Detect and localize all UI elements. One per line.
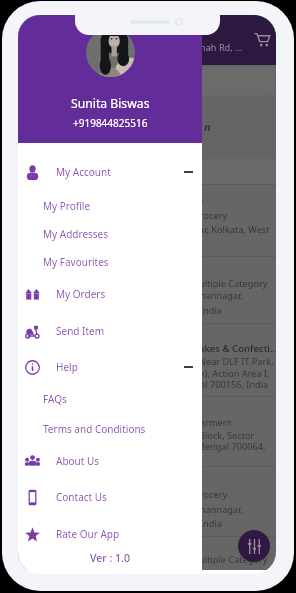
staticText: rocery	[200, 488, 228, 501]
staticText: hannagar,	[200, 503, 243, 516]
staticText: About Us	[56, 454, 100, 468]
staticText: My Orders	[56, 287, 106, 301]
staticText: My Profile	[43, 199, 91, 213]
button[interactable]: My Orders	[18, 276, 202, 312]
staticText: arment	[200, 416, 232, 429]
staticText: ultiple Category	[199, 277, 268, 290]
staticText: akes & Confecti...	[199, 342, 276, 355]
staticText: My Favourites	[43, 255, 109, 269]
staticText: ultiple Category	[199, 553, 268, 566]
button[interactable]: Terms and Conditions	[18, 415, 202, 443]
button[interactable]: Contact Us	[18, 479, 202, 515]
staticText: Sunita Biswas	[71, 95, 150, 112]
button[interactable]: My Favourites	[18, 248, 202, 276]
staticText: FAQs	[43, 392, 67, 406]
staticText: My Addresses	[43, 227, 109, 241]
staticText: Help	[56, 360, 78, 374]
staticText: Near DLF IT Park,	[199, 355, 274, 368]
staticText: +919844825516	[73, 116, 148, 130]
staticText: n	[204, 119, 211, 134]
button[interactable]: Send Item	[18, 313, 202, 349]
button[interactable]: About Us	[18, 443, 202, 479]
staticText: India	[200, 517, 222, 530]
staticText: hah Rd, ...	[200, 41, 243, 54]
button[interactable]	[23, 67, 275, 95]
staticText: rocery	[200, 209, 228, 222]
staticText: My Account	[56, 165, 111, 179]
staticText: Block, Sector	[199, 429, 255, 442]
button[interactable]: My Account	[18, 154, 202, 190]
staticText: Send Item	[56, 324, 105, 338]
staticText: India	[200, 304, 222, 317]
staticText: Bengal 700064,	[199, 440, 266, 453]
button[interactable]: Cart	[254, 31, 270, 47]
staticText: Contact Us	[56, 490, 107, 504]
staticText: r	[199, 195, 204, 208]
staticText: hannagar,	[200, 289, 243, 302]
staticText: n), Action Area I,	[199, 367, 270, 380]
staticText: Terms and Conditions	[43, 422, 146, 436]
button[interactable]: My Profile	[18, 192, 202, 220]
staticText: Rate Our App	[56, 527, 120, 541]
staticText: ar, Kolkata, West	[199, 223, 270, 236]
button[interactable]: Rate Our App	[18, 516, 202, 552]
staticText: Ver : 1.0	[18, 551, 202, 565]
staticText: al 700156, India	[200, 378, 269, 391]
button[interactable]: Filter	[238, 530, 270, 562]
button[interactable]: FAQs	[18, 385, 202, 413]
button[interactable]: Help	[18, 349, 202, 385]
button[interactable]: My Addresses	[18, 220, 202, 248]
